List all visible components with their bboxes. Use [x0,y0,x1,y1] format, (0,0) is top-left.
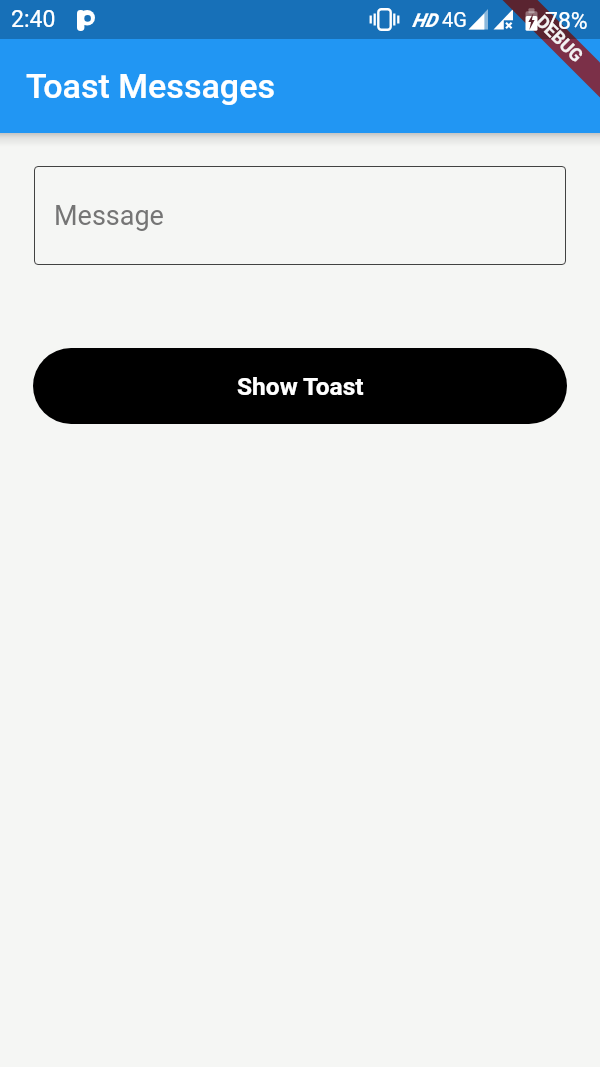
staticText: DEBUG [532,10,588,66]
staticText: 78% [545,8,588,35]
staticText: 2:40 [11,6,56,33]
staticText: 4G [442,8,467,31]
button[interactable]: Show Toast [33,348,567,424]
other: Notification [77,10,95,31]
staticText: Show Toast [237,372,364,401]
staticText: Toast Messages [26,66,275,106]
staticText: Message [54,200,164,232]
button[interactable]: Message [34,166,566,265]
staticText: HD [412,9,438,31]
